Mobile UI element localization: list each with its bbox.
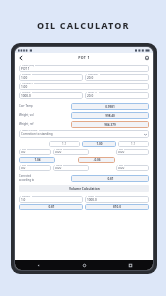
- button[interactable]: Correction type: [19, 130, 149, 138]
- staticText: Position: [22, 73, 31, 76]
- button[interactable]: 0.00: [116, 149, 149, 155]
- staticText: Pos: [22, 148, 26, 151]
- staticText: Pos: [22, 164, 26, 167]
- staticText: 1.1: [62, 142, 67, 146]
- button[interactable]: 0.0: [19, 149, 51, 155]
- button[interactable]: -0.06: [78, 157, 115, 163]
- staticText: 1.00: [96, 142, 103, 146]
- button[interactable]: 20.0: [85, 74, 149, 81]
- staticText: Volume: [22, 91, 31, 94]
- button[interactable]: 998.40: [71, 112, 149, 119]
- button[interactable]: POT 1: [19, 65, 149, 72]
- button[interactable]: 0.81: [19, 204, 83, 210]
- button[interactable]: 1.0: [19, 196, 83, 203]
- staticText: Volume Calculation: [69, 187, 100, 191]
- button[interactable]: 0.9981: [71, 103, 149, 110]
- staticText: 0.0: [21, 150, 26, 154]
- staticText: Number 2: [22, 82, 33, 85]
- button[interactable]: Save: [143, 54, 150, 61]
- staticText: 1.00: [21, 85, 28, 89]
- button[interactable]: 810.0: [85, 204, 149, 210]
- staticText: 1.1: [131, 142, 136, 146]
- button[interactable]: Back: [15, 260, 61, 270]
- button[interactable]: 1.00: [19, 74, 83, 81]
- staticText: Name (tag): [22, 64, 34, 67]
- staticText: 984.379: [104, 123, 116, 127]
- button[interactable]: 20.0: [85, 92, 149, 99]
- staticText: 0.0: [21, 166, 26, 170]
- button[interactable]: Back: [17, 54, 24, 61]
- staticText: Diameter: [88, 73, 99, 76]
- staticText: Corrected: [19, 174, 32, 178]
- staticText: 1.0: [21, 198, 26, 202]
- staticText: 0.00: [55, 150, 62, 154]
- staticText: 998.40: [105, 114, 115, 118]
- button[interactable]: 1.04: [19, 157, 55, 163]
- button[interactable]: 1.00: [19, 83, 149, 90]
- staticText: 0.00: [55, 166, 62, 170]
- staticText: 1000.0: [87, 198, 97, 202]
- staticText: Weight, ref: [19, 122, 71, 126]
- staticText: 810.0: [113, 205, 121, 209]
- staticText: -0.06: [93, 158, 101, 162]
- button[interactable]: 1000.0: [85, 196, 149, 203]
- staticText: Res: [119, 148, 123, 151]
- button[interactable]: 0.0: [19, 165, 51, 171]
- button[interactable]: 1000.0: [19, 92, 83, 99]
- staticText: Make a choice: [22, 129, 38, 132]
- button[interactable]: Home: [61, 260, 107, 270]
- staticText: 1.00: [21, 76, 28, 80]
- staticText: 0.9981: [105, 105, 115, 109]
- staticText: Temp °C: [88, 91, 98, 94]
- button[interactable]: Volume Calculation: [19, 185, 149, 192]
- staticText: Weight, vol: [19, 113, 71, 117]
- staticText: Corr Temp: [19, 104, 71, 108]
- staticText: Litres: [88, 195, 94, 198]
- staticText: Value: [56, 148, 62, 151]
- staticText: Correction to standing: [21, 132, 53, 136]
- staticText: Density: [22, 195, 31, 198]
- button[interactable]: 1.00: [82, 141, 116, 147]
- button[interactable]: 0.00: [53, 149, 89, 155]
- staticText: 0.81: [48, 205, 55, 209]
- staticText: POT 1: [21, 67, 30, 71]
- button[interactable]: 984.379: [71, 121, 149, 128]
- button[interactable]: Recent apps: [107, 260, 153, 270]
- staticText: Res: [119, 164, 123, 167]
- staticText: POT 1: [78, 55, 90, 60]
- staticText: according to: [19, 178, 35, 182]
- staticText: 20.0: [87, 76, 94, 80]
- staticText: 0.81: [107, 177, 114, 181]
- staticText: 20.0: [87, 94, 94, 98]
- staticText: Value: [56, 164, 62, 167]
- staticText: 1000.0: [21, 94, 31, 98]
- staticText: 0.00: [118, 166, 125, 170]
- button[interactable]: 0.81: [71, 175, 149, 182]
- staticText: 0.00: [118, 150, 125, 154]
- button[interactable]: 0.00: [116, 165, 149, 171]
- button[interactable]: 0.00: [53, 165, 89, 171]
- button[interactable]: 1.1: [49, 141, 80, 147]
- staticText: OIL CALCULATOR: [37, 19, 130, 31]
- button[interactable]: 1.1: [118, 141, 149, 147]
- staticText: 1.04: [34, 158, 41, 162]
